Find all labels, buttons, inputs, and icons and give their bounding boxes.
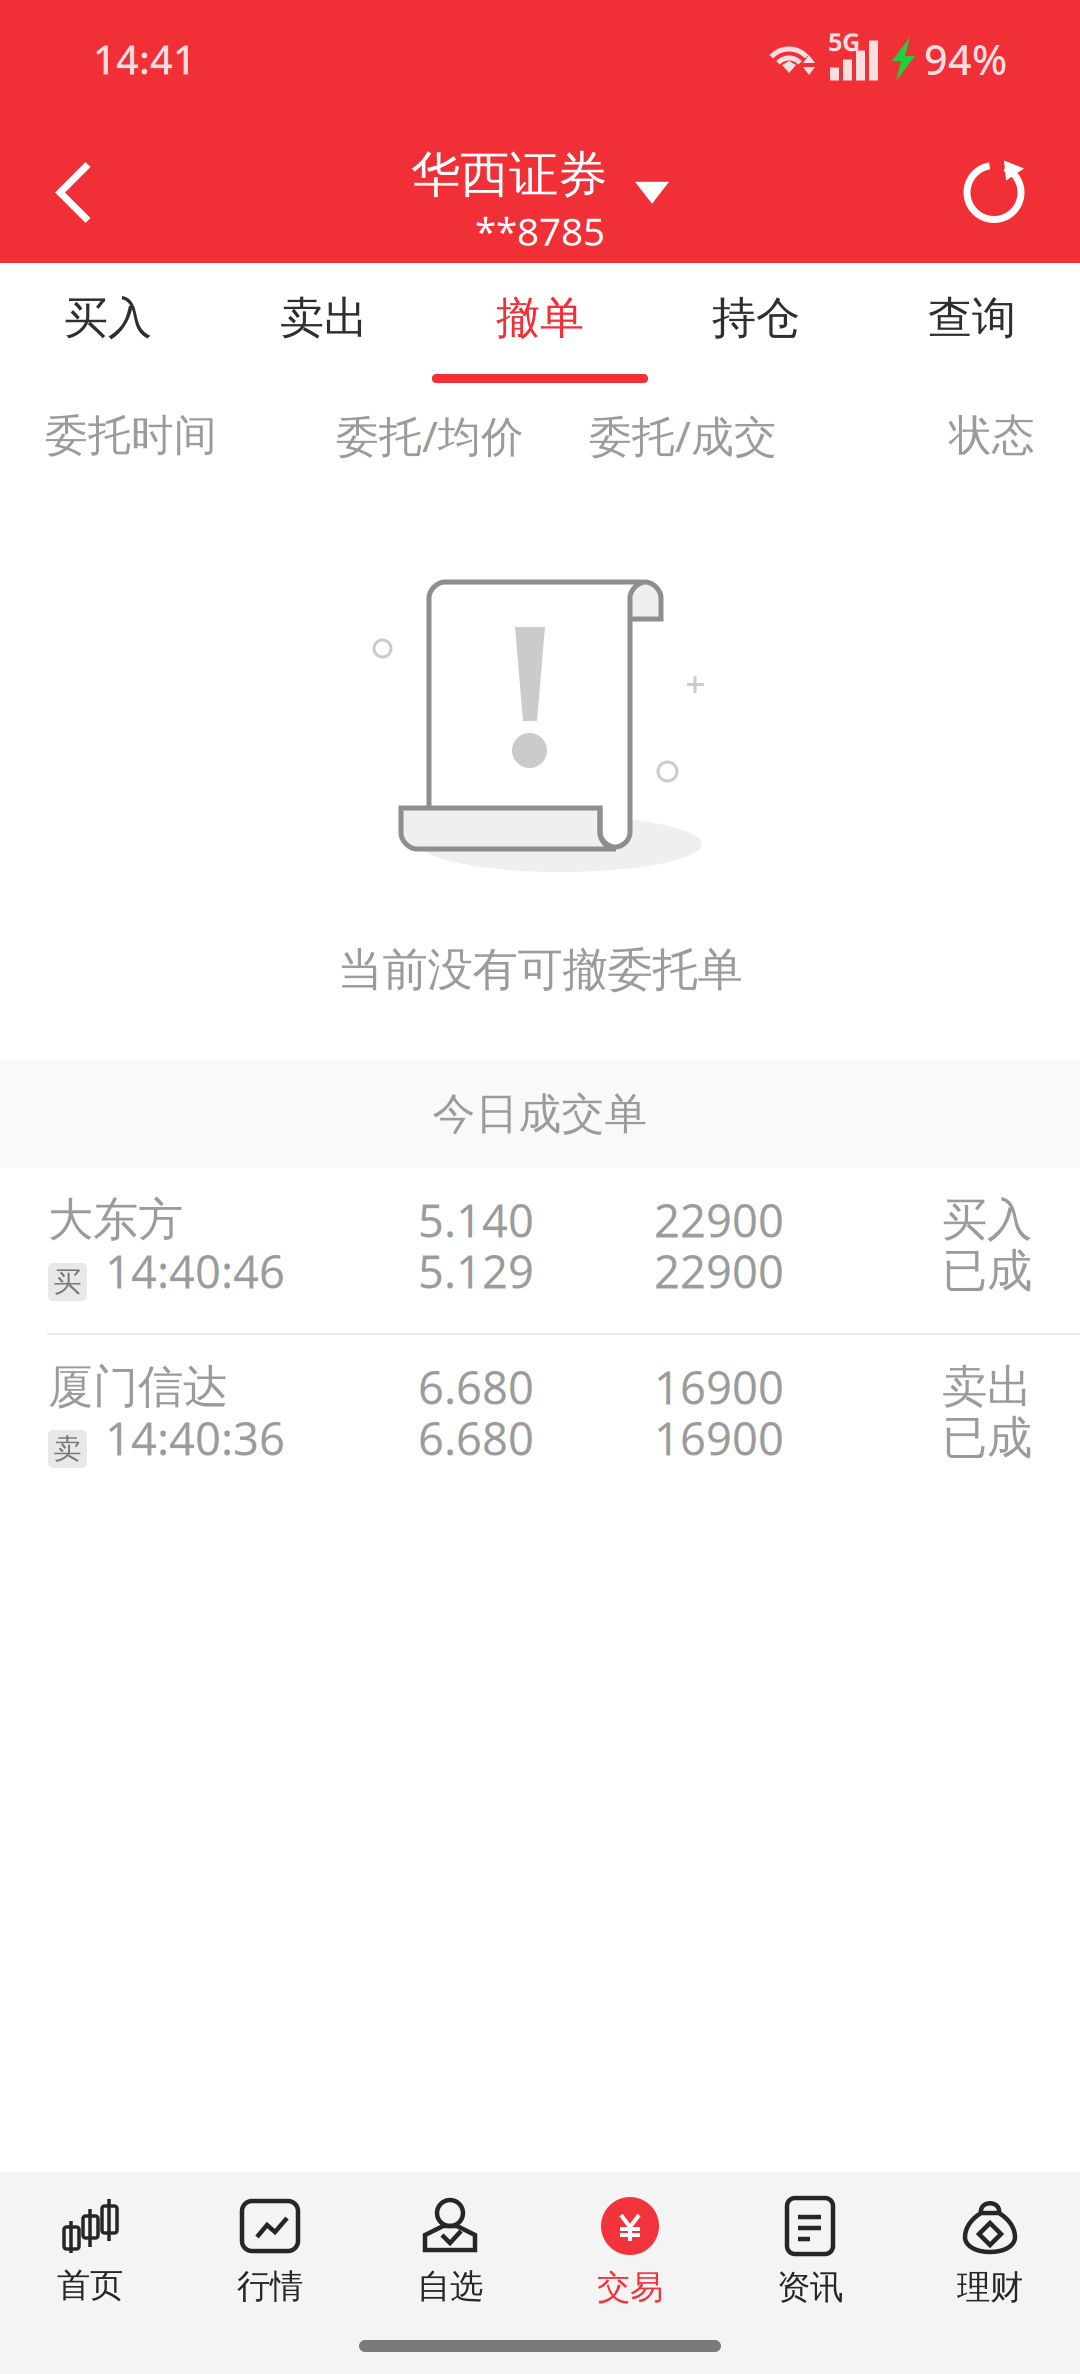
staticText: 22900 xyxy=(654,1241,784,1301)
button[interactable]: 行情 xyxy=(180,2172,360,2314)
staticText: 卖 xyxy=(53,1432,81,1466)
button[interactable]: 撤单 xyxy=(432,263,648,387)
button[interactable]: 持仓 xyxy=(648,263,864,387)
button[interactable]: 华西证券 xyxy=(401,124,679,256)
staticText: **8785 xyxy=(475,205,605,256)
staticText: 查询 xyxy=(928,291,1016,345)
staticText: 16900 xyxy=(654,1357,784,1417)
staticText: 5.129 xyxy=(418,1241,534,1301)
button[interactable]: Back xyxy=(0,124,130,256)
staticText: 委托/成交 xyxy=(589,407,777,464)
button[interactable]: 交易 xyxy=(540,2172,720,2314)
staticText: 今日成交单 xyxy=(432,1088,647,1140)
staticText: 委托时间 xyxy=(45,409,217,462)
staticText: 首页 xyxy=(57,2265,123,2306)
button[interactable]: 厦门信达 xyxy=(0,1335,1080,1500)
staticText: 14:41 xyxy=(93,32,196,85)
staticText: 94% xyxy=(924,32,1007,86)
button[interactable]: 理财 xyxy=(900,2172,1080,2314)
staticText: 14:40:36 xyxy=(105,1408,285,1468)
staticText: 持仓 xyxy=(712,291,800,345)
staticText: 6.680 xyxy=(418,1408,534,1468)
staticText: 华西证券 xyxy=(411,144,607,205)
staticText: 买入 xyxy=(942,1192,1032,1248)
staticText: 6.680 xyxy=(418,1357,534,1417)
staticText: 自选 xyxy=(417,2266,483,2307)
staticText: 委托/均价 xyxy=(336,407,524,464)
staticText: 资讯 xyxy=(777,2267,843,2308)
button[interactable]: Refresh xyxy=(922,124,1080,256)
staticText: 买 xyxy=(53,1265,81,1299)
staticText: 交易 xyxy=(597,2267,663,2308)
staticText: 厦门信达 xyxy=(48,1359,228,1415)
staticText: 已成 xyxy=(942,1410,1032,1466)
button[interactable]: 自选 xyxy=(360,2172,540,2314)
staticText: 理财 xyxy=(957,2267,1023,2308)
button[interactable]: 买入 xyxy=(0,263,216,387)
staticText: 已成 xyxy=(942,1243,1032,1299)
button[interactable]: 资讯 xyxy=(720,2172,900,2314)
staticText: 撤单 xyxy=(496,291,584,345)
staticText: 大东方 xyxy=(48,1192,183,1248)
staticText: 16900 xyxy=(654,1408,784,1468)
staticText: 14:40:46 xyxy=(105,1241,285,1301)
button[interactable]: 卖出 xyxy=(216,263,432,387)
button[interactable]: 首页 xyxy=(0,2172,180,2314)
staticText: 5.140 xyxy=(418,1190,534,1250)
staticText: 当前没有可撤委托单 xyxy=(337,942,742,998)
staticText: 卖出 xyxy=(942,1359,1032,1415)
staticText: 5G xyxy=(828,24,860,58)
staticText: 卖出 xyxy=(280,291,368,345)
staticText: 行情 xyxy=(237,2266,303,2307)
staticText: 22900 xyxy=(654,1190,784,1250)
button[interactable]: 查询 xyxy=(864,263,1080,387)
staticText: 状态 xyxy=(949,409,1035,462)
button[interactable]: 大东方 xyxy=(0,1168,1080,1333)
staticText: 买入 xyxy=(64,291,152,345)
